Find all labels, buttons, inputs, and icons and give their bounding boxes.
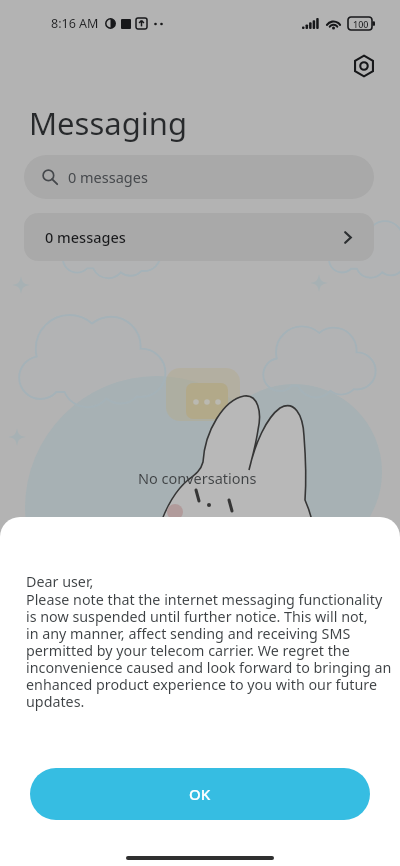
button[interactable]: Settings <box>348 50 380 82</box>
staticText: 100 <box>353 18 369 30</box>
button[interactable]: 0 messages <box>24 155 374 199</box>
staticText: No conversations <box>138 468 257 488</box>
button[interactable]: OK <box>30 768 370 820</box>
staticText: OK <box>189 784 211 804</box>
staticText: Messaging <box>29 102 187 144</box>
staticText: Dear user, Please note that the internet… <box>26 572 396 711</box>
button[interactable]: 0 messages <box>24 213 374 261</box>
staticText: 0 messages <box>68 167 148 187</box>
staticText: 8:16 AM <box>51 15 99 32</box>
staticText: 0 messages <box>45 227 126 247</box>
